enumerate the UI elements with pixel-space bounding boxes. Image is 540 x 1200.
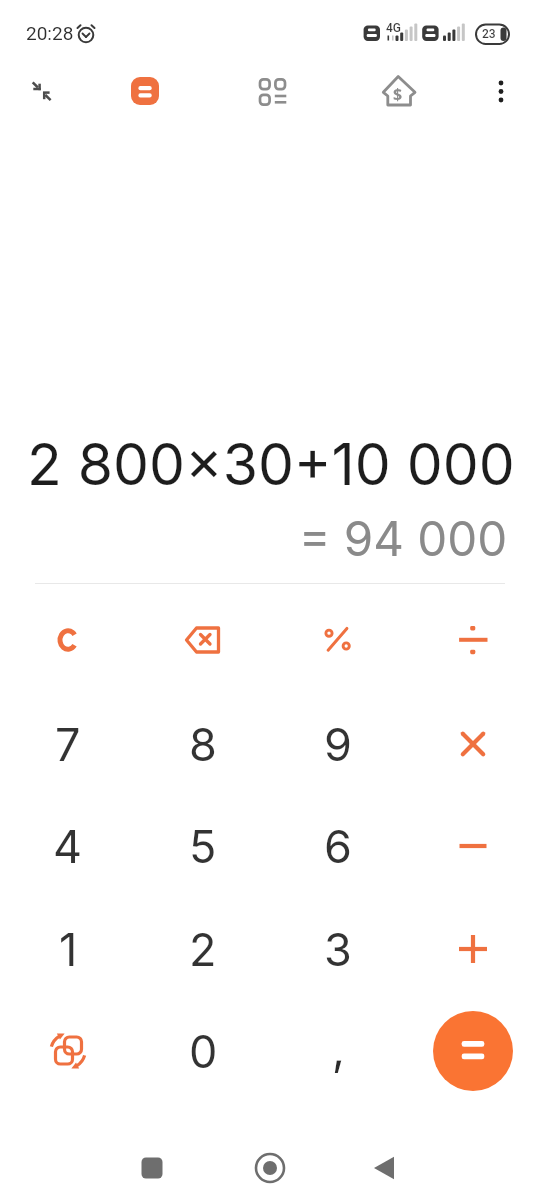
- button[interactable]: 4: [11, 800, 125, 892]
- button[interactable]: 8: [146, 698, 260, 790]
- button[interactable]: [131, 77, 159, 105]
- button[interactable]: [433, 1011, 513, 1091]
- staticText: 4: [53, 819, 83, 873]
- staticText: 0: [189, 1024, 218, 1078]
- button[interactable]: 6: [281, 800, 395, 892]
- staticText: 4G: [386, 21, 401, 35]
- button[interactable]: [11, 594, 125, 686]
- button[interactable]: 1: [11, 903, 125, 995]
- button[interactable]: $: [379, 72, 419, 112]
- staticText: = 94 000: [299, 510, 508, 567]
- button[interactable]: [252, 1150, 288, 1186]
- staticText: ,: [332, 1021, 345, 1075]
- button[interactable]: 3: [281, 903, 395, 995]
- staticText: 7: [55, 717, 81, 771]
- staticText: 6: [324, 819, 352, 873]
- button[interactable]: [487, 75, 515, 109]
- button[interactable]: [416, 800, 530, 892]
- button[interactable]: [134, 1150, 170, 1186]
- button[interactable]: 0: [146, 1005, 260, 1097]
- button[interactable]: [281, 594, 395, 686]
- button[interactable]: [416, 903, 530, 995]
- button[interactable]: [11, 1005, 125, 1097]
- button[interactable]: 9: [281, 698, 395, 790]
- button[interactable]: ,: [281, 1005, 395, 1097]
- staticText: 8: [189, 717, 217, 771]
- button[interactable]: [24, 73, 60, 109]
- button[interactable]: 7: [11, 698, 125, 790]
- staticText: $: [393, 83, 403, 105]
- button[interactable]: [146, 594, 260, 686]
- staticText: 1: [59, 922, 78, 976]
- button[interactable]: [256, 75, 290, 109]
- staticText: 5: [189, 819, 217, 873]
- staticText: 2 800×30+10 000: [27, 430, 515, 499]
- button[interactable]: [416, 594, 530, 686]
- button[interactable]: 2: [146, 903, 260, 995]
- staticText: 9: [324, 717, 352, 771]
- button[interactable]: 5: [146, 800, 260, 892]
- button[interactable]: [416, 698, 530, 790]
- staticText: 20:28: [26, 22, 74, 44]
- button[interactable]: [366, 1150, 402, 1186]
- staticText: 2: [189, 922, 217, 976]
- staticText: 3: [324, 922, 352, 976]
- staticText: 23: [482, 27, 496, 41]
